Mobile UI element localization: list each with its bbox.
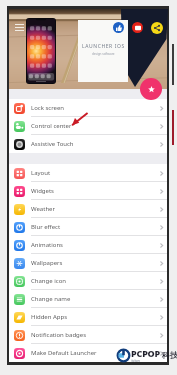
button[interactable]: Change icon [9, 272, 167, 290]
staticText: Notification badges [31, 331, 87, 339]
button[interactable]: Notification badges [9, 326, 167, 344]
button[interactable]: Assistive Touch [9, 135, 167, 153]
button[interactable]: Menu [13, 22, 26, 33]
staticText: Change name [31, 295, 71, 303]
button[interactable]: Control center [9, 117, 167, 135]
staticText: Widgets [31, 187, 54, 195]
staticText: Hidden Apps [31, 313, 68, 321]
button[interactable]: Animations [9, 236, 167, 254]
staticText: 泡泡网 [131, 359, 140, 363]
staticText: LAUNCHER IOS [82, 43, 125, 50]
button[interactable]: Lock screen [9, 99, 167, 117]
button[interactable]: Change name [9, 290, 167, 308]
staticText: Assistive Touch [31, 140, 74, 148]
button[interactable]: YouTube [132, 22, 143, 33]
staticText: Blur effect [31, 223, 61, 231]
button[interactable]: Facebook [113, 22, 124, 33]
staticText: Change icon [31, 277, 66, 285]
button[interactable]: Make Default Launcher [9, 344, 167, 362]
staticText: Control center [31, 122, 72, 130]
staticText: Layout [31, 169, 51, 177]
staticText: Lock screen [31, 104, 65, 112]
staticText: Weather [31, 205, 55, 213]
button[interactable]: Share [151, 22, 163, 34]
staticText: Make Default Launcher [31, 349, 97, 357]
button[interactable]: Hidden Apps [9, 308, 167, 326]
button[interactable]: Blur effect [9, 218, 167, 236]
staticText: Wallpapers [31, 259, 63, 267]
button[interactable]: Wallpapers [9, 254, 167, 272]
staticText: design software [92, 52, 115, 56]
button[interactable]: Layout [9, 164, 167, 182]
staticText: 科技 [162, 350, 177, 360]
staticText: Animations [31, 241, 63, 249]
button[interactable]: Rate this app [140, 78, 162, 100]
button[interactable]: Weather [9, 200, 167, 218]
staticText: PCPOP [131, 347, 161, 359]
button[interactable]: Widgets [9, 182, 167, 200]
